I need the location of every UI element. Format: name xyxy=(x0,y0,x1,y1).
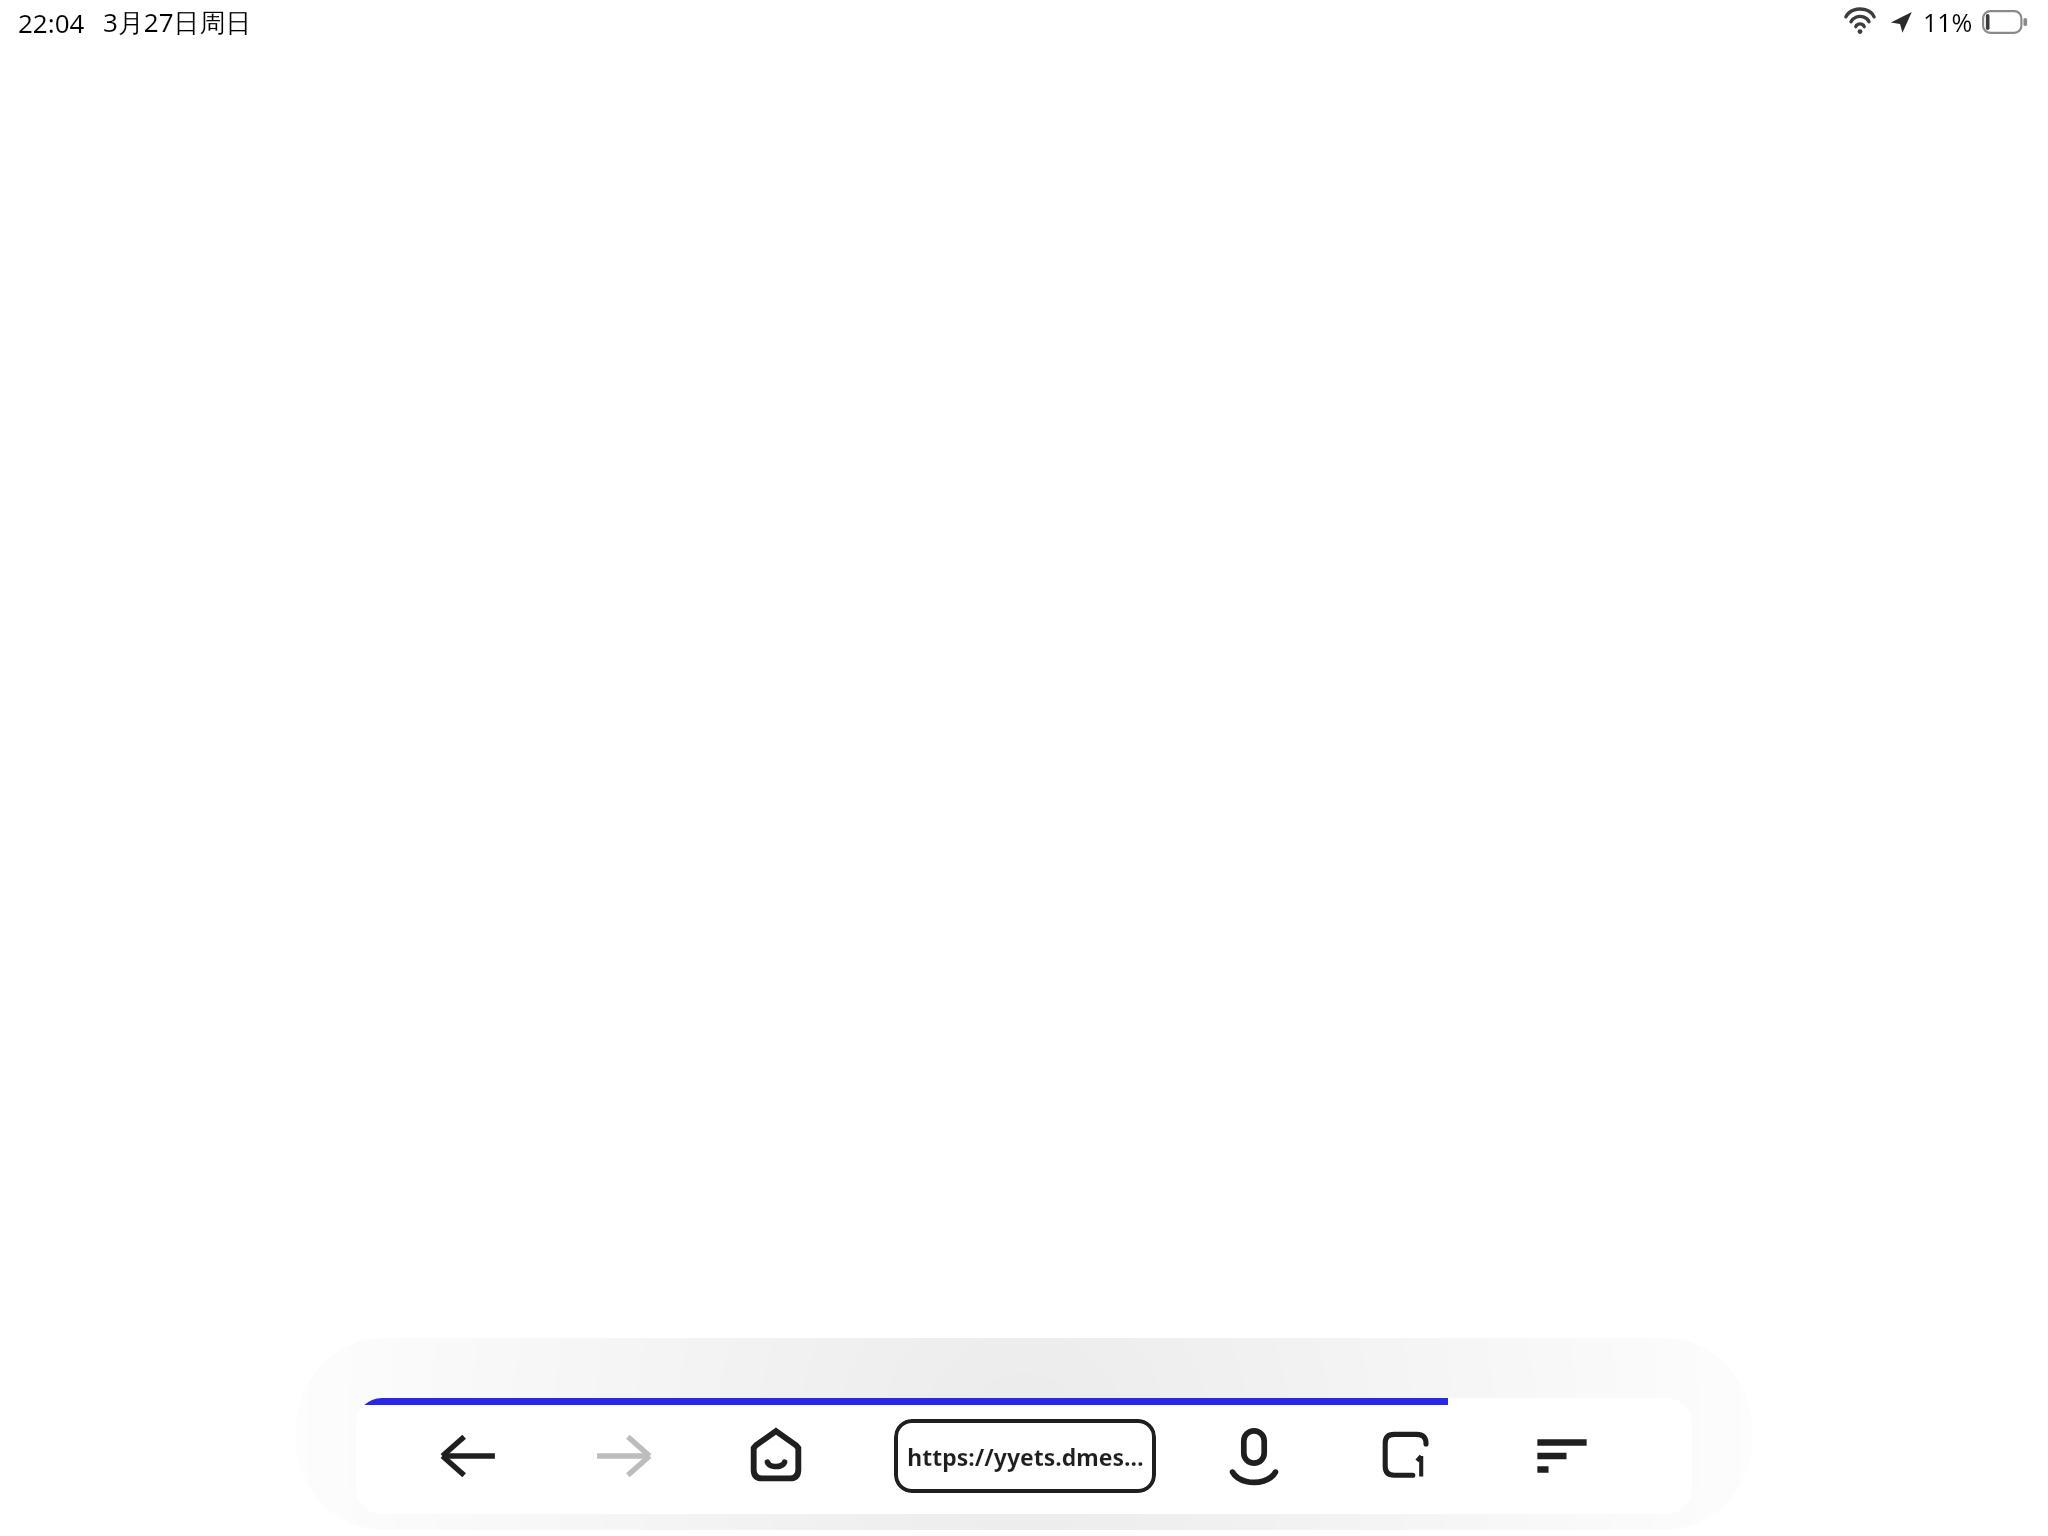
staticText: https://yyets.dmes… xyxy=(907,1441,1144,1472)
staticText: 3月27日周日 xyxy=(103,4,252,40)
staticText: 22:04 xyxy=(18,5,85,40)
button[interactable]: https://yyets.dmes… xyxy=(894,1419,1156,1493)
button[interactable]: Home xyxy=(724,1404,828,1508)
button[interactable]: Tabs, 1 open xyxy=(1356,1404,1460,1508)
button[interactable]: Voice search xyxy=(1202,1404,1306,1508)
staticText: 11% xyxy=(1923,5,1973,39)
button[interactable]: Back xyxy=(416,1404,520,1508)
button[interactable]: Forward xyxy=(572,1404,676,1508)
button[interactable]: More options xyxy=(1510,1404,1614,1508)
